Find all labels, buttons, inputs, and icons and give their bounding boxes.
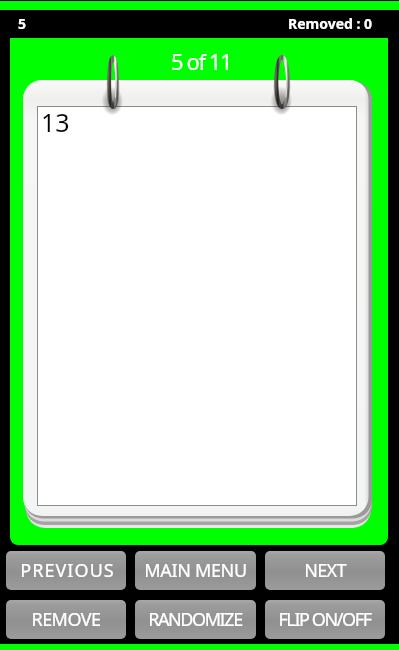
staticText: PREVIOUS	[20, 558, 115, 583]
button[interactable]: MAIN MENU	[135, 551, 256, 590]
staticText: 13	[41, 105, 70, 139]
button[interactable]: PREVIOUS	[6, 551, 126, 590]
staticText: MAIN MENU	[144, 558, 247, 583]
staticText: NEXT	[304, 558, 346, 583]
staticText: 5 of 11	[171, 46, 232, 76]
button[interactable]: REMOVE	[6, 600, 126, 639]
button[interactable]: NEXT	[265, 551, 385, 590]
button[interactable]: FLIP ON/OFF	[265, 600, 385, 639]
staticText: RANDOMIZE	[148, 607, 242, 632]
staticText: REMOVE	[31, 607, 101, 632]
staticText: Removed : 0	[288, 14, 373, 33]
button[interactable]: RANDOMIZE	[135, 600, 256, 639]
staticText: FLIP ON/OFF	[278, 607, 371, 632]
button[interactable]: 13	[23, 80, 373, 529]
staticText: 5	[18, 14, 27, 33]
